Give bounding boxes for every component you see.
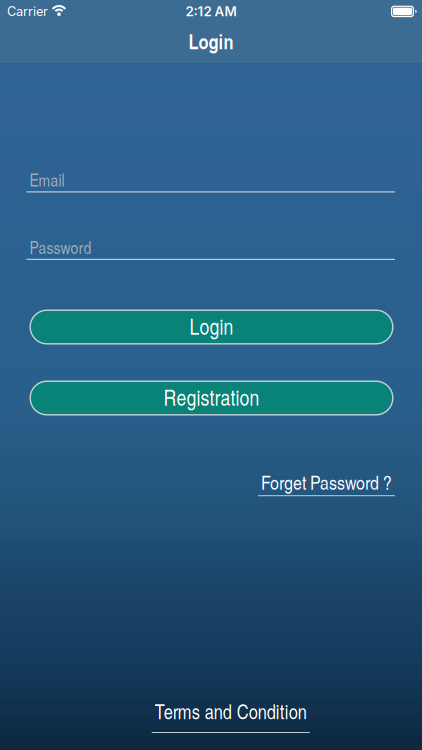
staticText: 2:12 AM [185,3,236,19]
button[interactable]: Login [26,309,395,344]
staticText: Email [29,168,64,191]
button[interactable]: Forget Password ? [258,468,395,496]
staticText: Login [188,27,233,55]
staticText: Carrier [7,4,48,19]
staticText: Registration [163,382,259,412]
button[interactable]: Registration [26,380,395,415]
staticText: Terms and Condition [155,698,307,725]
button[interactable]: Terms and Condition [152,698,310,733]
staticText: Login [189,311,233,341]
staticText: Forget Password ? [261,468,392,495]
staticText: Password [29,235,91,259]
